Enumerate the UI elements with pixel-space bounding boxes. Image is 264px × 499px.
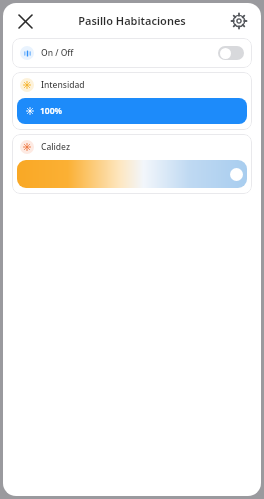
button[interactable]: On / Off <box>12 38 252 68</box>
staticText: Calidez <box>41 141 70 153</box>
staticText: Intensidad <box>41 79 85 91</box>
staticText: Pasillo Habitaciones <box>78 13 186 28</box>
button[interactable]: Settings <box>225 7 253 35</box>
staticText: On / Off <box>41 47 74 59</box>
button[interactable]: 100% <box>17 98 247 124</box>
staticText: 100% <box>40 105 63 117</box>
button[interactable]: Close <box>11 7 39 35</box>
button[interactable] <box>17 160 247 188</box>
